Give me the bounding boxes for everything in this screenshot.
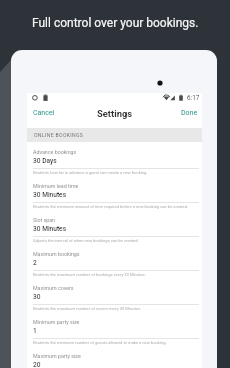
staticText: 6:17	[187, 94, 200, 102]
button[interactable]: Cancel	[27, 105, 61, 121]
staticText: Full control over your bookings.	[32, 16, 199, 30]
staticText: Restricts the maximum number of bookings…	[33, 272, 146, 277]
button[interactable]: Maximum bookings	[27, 244, 202, 278]
staticText: Cancel	[33, 109, 55, 117]
staticText: 2	[33, 259, 37, 267]
button[interactable]: Maximum party size	[27, 346, 202, 368]
staticText: Done	[181, 109, 198, 117]
staticText: Adjusts the interval of when new booking…	[33, 238, 139, 243]
staticText: Minimum party size	[33, 319, 80, 325]
staticText: Settings	[97, 108, 133, 119]
staticText: Minimum lead time	[33, 183, 79, 189]
staticText: Restricts the maximum number of covers e…	[33, 306, 142, 311]
staticText: Maximum party size	[33, 353, 81, 359]
staticText: 1	[33, 327, 37, 335]
staticText: 30 Days	[33, 157, 57, 165]
staticText: Restricts the minimum amount of time req…	[33, 204, 189, 209]
staticText: Restricts how far in advance a guest can…	[33, 170, 148, 175]
staticText: Maximum bookings	[33, 251, 80, 257]
button[interactable]: Minimum lead time	[27, 176, 202, 210]
staticText: Restricts the minimum number of guests a…	[33, 340, 167, 345]
button[interactable]: Slot span	[27, 210, 202, 244]
staticText: 30 Minutes	[33, 191, 67, 199]
button[interactable]: Advance bookings	[27, 142, 202, 176]
staticText: Slot span	[33, 217, 56, 223]
staticText: Advance bookings	[33, 149, 77, 155]
staticText: 30 Minutes	[33, 225, 67, 233]
staticText: 20	[33, 361, 41, 368]
button[interactable]: Minimum party size	[27, 312, 202, 346]
button[interactable]: Maximum covers	[27, 278, 202, 312]
staticText: ONLINE BOOKINGS	[34, 132, 84, 138]
button[interactable]: Done	[176, 105, 202, 121]
staticText: Maximum covers	[33, 285, 74, 291]
staticText: 30	[33, 293, 41, 301]
